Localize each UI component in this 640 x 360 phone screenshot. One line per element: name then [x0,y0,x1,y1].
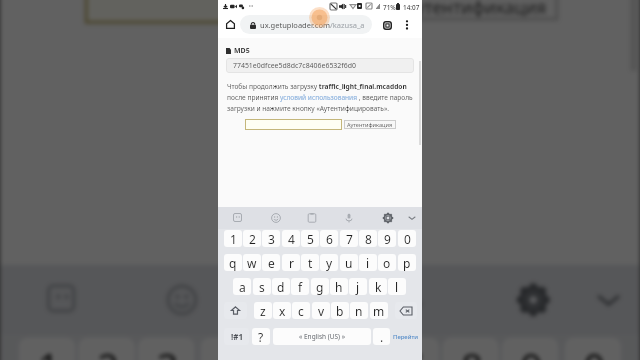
button[interactable]: 4 [282,230,300,247]
button[interactable]: Перейти [393,328,418,345]
button[interactable]: y [320,254,338,271]
button[interactable]: 6 [320,230,338,247]
staticText: y [326,255,333,271]
button[interactable]: w [243,254,261,271]
button[interactable]: Keyboard tool [229,209,247,227]
button[interactable]: Keyboard tool [580,272,637,328]
staticText: 3 [268,231,275,247]
staticText: !#1 [231,331,243,342]
button[interactable]: Shift [224,302,247,319]
button[interactable]: e [262,254,280,271]
button[interactable]: Backspace [395,302,417,319]
staticText: 77451e0dfcee5d8dc7c8406e6532f6d0 [233,61,356,70]
button[interactable]: 8 [359,230,377,247]
button[interactable]: Keyboard tool [267,272,323,328]
button[interactable]: c [292,302,310,319]
button[interactable]: Keyboard tool [267,209,285,227]
button[interactable]: o [378,254,396,271]
button[interactable]: 5 [260,337,317,360]
button[interactable]: x [273,302,291,319]
button[interactable]: More options [403,20,411,31]
button[interactable]: z [254,302,272,319]
staticText: h [335,279,343,295]
button[interactable]: Keyboard tool [303,209,321,227]
button[interactable]: u [340,254,358,271]
button[interactable]: r [282,254,300,271]
button[interactable]: 7 [383,337,439,360]
button[interactable]: 2 [78,337,135,360]
button[interactable]: Keyboard tool [379,209,397,227]
staticText: 6 [339,341,361,360]
button[interactable]: q [224,254,242,271]
staticText: n [355,303,363,319]
button[interactable]: n [350,302,368,319]
staticText: u [345,255,353,271]
button[interactable]: i [359,254,377,271]
button[interactable]: Keyboard tool [340,209,358,227]
staticText: r [289,255,294,271]
staticText: c [298,303,304,319]
staticText: t [308,255,313,271]
button[interactable]: f [291,278,309,295]
button[interactable]: v [312,302,330,319]
button[interactable]: Чтобы продолжить загрузку traffic_light_… [227,82,419,113]
staticText: o [383,255,391,271]
button[interactable] [85,0,389,24]
button[interactable]: s [253,278,271,295]
staticText: 4 [288,231,295,247]
staticText: v [318,303,325,319]
button[interactable]: Keyboard tool [154,272,210,328]
button[interactable]: 2 [243,230,261,247]
button[interactable]: h [330,278,348,295]
button[interactable]: k [369,278,387,295]
button[interactable]: 3 [138,337,194,360]
button[interactable] [245,119,342,130]
button[interactable]: 9 [378,230,396,247]
button[interactable]: 1 [224,230,242,247]
button[interactable]: Аутентификация [395,0,558,21]
button[interactable]: 1 [19,337,75,360]
button[interactable]: 8 [442,337,499,360]
button[interactable]: 7 [340,230,358,247]
button[interactable]: ? [252,328,270,345]
button[interactable]: 5 [301,230,319,247]
button[interactable]: d [272,278,290,295]
button[interactable]: p [398,254,416,271]
button[interactable]: 9 [502,337,558,360]
staticText: 2 [97,341,119,360]
button[interactable]: t [301,254,319,271]
button[interactable]: 3 [262,230,280,247]
staticText: p [403,255,411,271]
button[interactable]: Keyboard tool [505,272,562,328]
button[interactable]: . [373,328,390,345]
button[interactable]: Keyboard tool [383,272,439,328]
button[interactable]: Keyboard tool [403,209,421,227]
button[interactable]: 4 [201,337,257,360]
button[interactable]: Keyboard tool [34,272,91,328]
button[interactable]: m [370,302,388,319]
button[interactable]: b [331,302,349,319]
button[interactable]: 6 [320,337,376,360]
button[interactable]: g [311,278,329,295]
button[interactable]: Home [226,20,235,29]
button[interactable]: a [233,278,251,295]
staticText: b [336,303,344,319]
button[interactable]: 0 [398,230,416,247]
staticText: j [356,279,360,295]
button[interactable]: !#1 [224,328,249,345]
staticText: 5 [279,341,301,360]
button[interactable]: l [388,278,406,295]
button[interactable]: ux.getuploader.com [240,15,372,34]
staticText: i [366,255,370,271]
staticText: ? [258,329,264,345]
button[interactable]: Аутентификация [344,120,396,129]
staticText: x [279,303,286,319]
staticText: MD5 [234,46,250,56]
staticText: 1 [230,231,237,247]
button[interactable]: j [349,278,367,295]
staticText: 9 [384,231,391,247]
button[interactable]: « English (US) » [273,328,371,345]
button[interactable]: 0 [565,337,621,360]
staticText: w [247,255,257,271]
button[interactable]: Tab switcher [383,21,392,30]
